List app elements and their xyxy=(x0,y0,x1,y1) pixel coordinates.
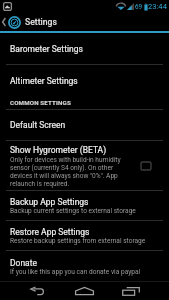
staticText: Altimeter Settings xyxy=(10,76,78,86)
button[interactable]: Show Hygrometer (BETA) xyxy=(0,141,169,190)
button[interactable]: Default Screen xyxy=(0,110,169,140)
staticText: 23:44 xyxy=(148,2,167,11)
staticText: Default Screen xyxy=(10,120,66,130)
staticText: Backup App Settings xyxy=(10,197,89,207)
button[interactable]: Barometer Settings xyxy=(0,33,169,64)
staticText: Barometer Settings xyxy=(10,44,83,54)
staticText: Backup current settings to external stor… xyxy=(10,207,136,215)
staticText: COMMON SETTINGS xyxy=(10,99,71,106)
staticText: Restore App Settings xyxy=(10,227,90,237)
button[interactable]: Recent apps xyxy=(118,282,144,300)
button[interactable]: Navigate up xyxy=(0,12,7,31)
button[interactable]: Donate xyxy=(0,251,169,281)
button[interactable]: Home xyxy=(71,282,98,300)
staticText: Only for devices with build-in humidity … xyxy=(10,156,124,188)
button[interactable]: Restore App Settings xyxy=(0,221,169,250)
button[interactable]: Back xyxy=(25,282,48,300)
staticText: Show Hygrometer (BETA) xyxy=(10,145,107,155)
staticText: Restore backup settings from external st… xyxy=(10,237,146,245)
staticText: 69 xyxy=(135,3,143,10)
button[interactable]: Altimeter Settings xyxy=(0,65,169,96)
staticText: Donate xyxy=(10,258,38,268)
button[interactable]: Backup App Settings xyxy=(0,191,169,220)
staticText: Settings xyxy=(25,17,57,27)
staticText: If you like this app you can donate via … xyxy=(10,268,141,276)
